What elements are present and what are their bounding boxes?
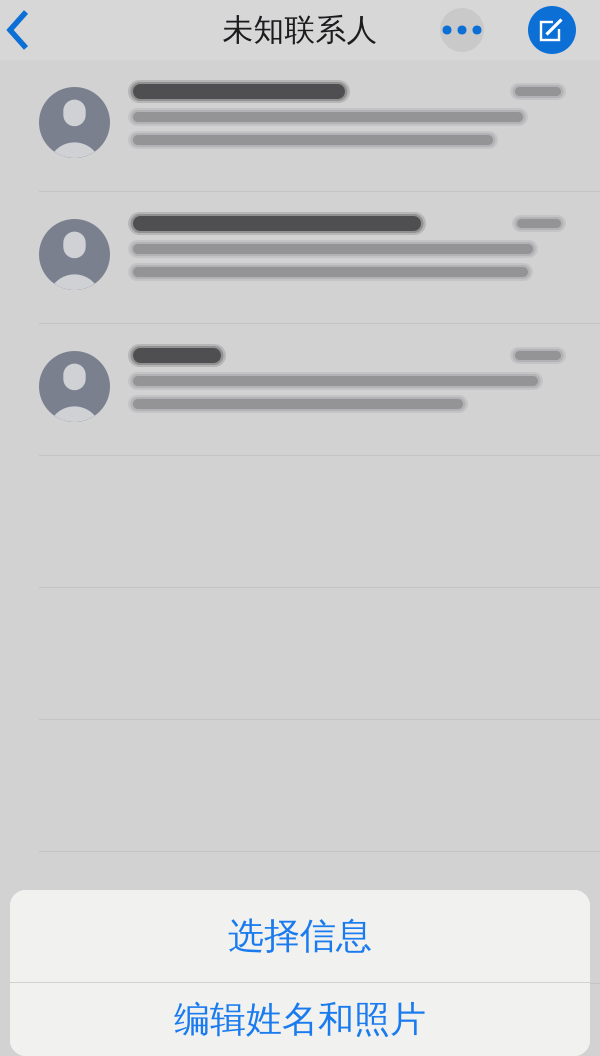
button[interactable]: 选择信息 (10, 890, 590, 982)
button[interactable]: Back (0, 0, 56, 60)
staticText: 编辑姓名和照片 (174, 997, 426, 1042)
staticText: 未知联系人 (222, 11, 377, 49)
button[interactable]: Compose message (528, 6, 576, 54)
staticText: 选择信息 (228, 914, 372, 958)
button[interactable]: More options (440, 8, 484, 52)
button[interactable]: 编辑姓名和照片 (10, 983, 590, 1056)
